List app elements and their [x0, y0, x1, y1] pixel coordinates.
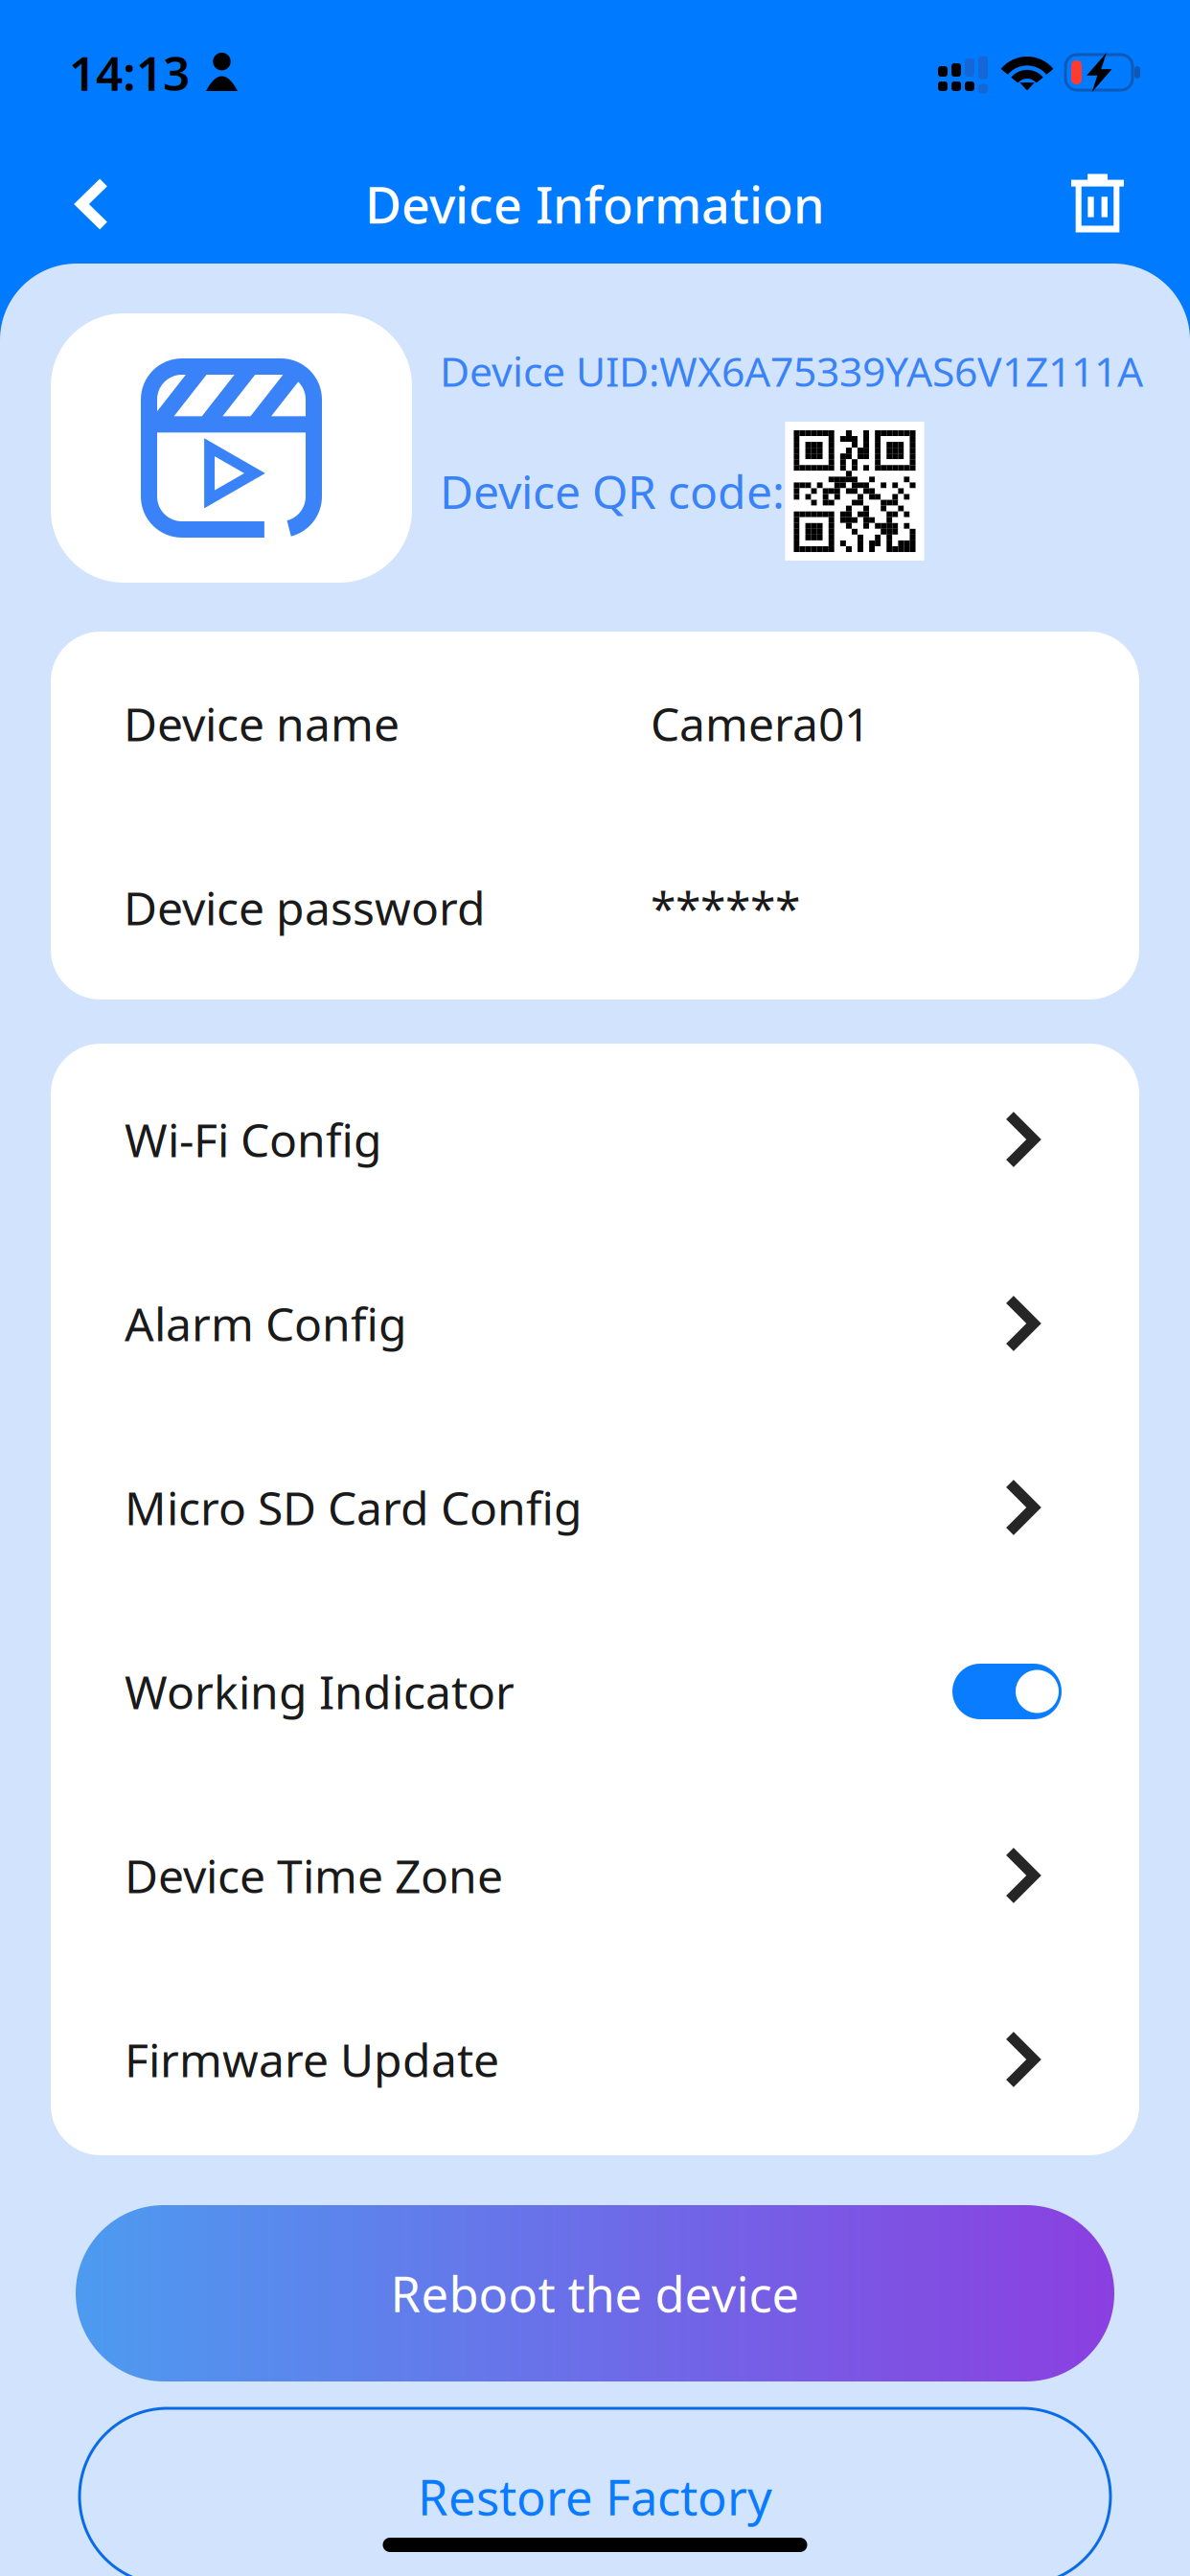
- staticText: Device Information: [365, 171, 825, 237]
- button[interactable]: Back: [0, 156, 153, 253]
- staticText: Restore Factory: [418, 2464, 772, 2529]
- staticText: Wi-Fi Config: [125, 1109, 382, 1170]
- staticText: Device password: [124, 877, 486, 938]
- button[interactable]: Reboot the device: [76, 2205, 1114, 2381]
- button[interactable]: Alarm Config: [51, 1231, 1139, 1415]
- staticText: Micro SD Card Config: [125, 1477, 583, 1538]
- staticText: ******: [651, 877, 800, 938]
- button[interactable]: Device Time Zone: [51, 1783, 1139, 1967]
- staticText: Device QR code:: [440, 461, 785, 522]
- button[interactable]: Restore Factory: [80, 2408, 1110, 2576]
- button[interactable]: Micro SD Card Config: [51, 1415, 1139, 1599]
- staticText: Alarm Config: [125, 1293, 407, 1354]
- staticText: Reboot the device: [390, 2261, 800, 2326]
- staticText: Device UID:WX6A75339YAS6V1Z111A: [440, 344, 1143, 398]
- button[interactable]: Wi-Fi Config: [51, 1047, 1139, 1231]
- button[interactable]: Delete: [1027, 154, 1190, 254]
- staticText: 14:13: [69, 41, 190, 104]
- staticText: Device name: [124, 693, 400, 754]
- staticText: Camera01: [651, 693, 870, 754]
- staticText: Firmware Update: [125, 2029, 499, 2090]
- staticText: Working Indicator: [125, 1661, 515, 1722]
- button[interactable]: Firmware Update: [51, 1967, 1139, 2151]
- staticText: Device Time Zone: [125, 1845, 503, 1906]
- button[interactable]: Working Indicator: [952, 1664, 1062, 1719]
